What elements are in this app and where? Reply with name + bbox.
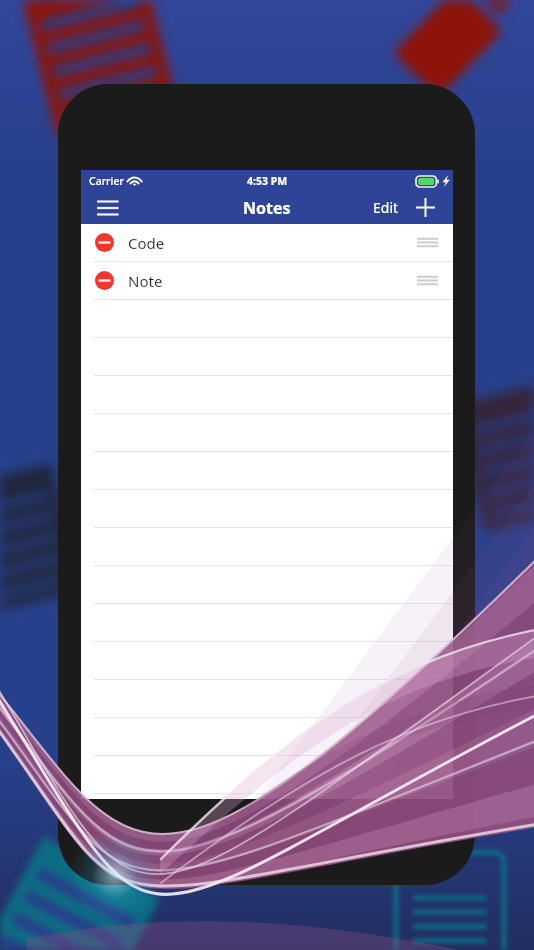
other: Reorder [417, 237, 438, 248]
button[interactable]: Menu [97, 197, 120, 219]
staticText: Edit [373, 198, 399, 217]
button[interactable]: Delete Note [81, 262, 453, 299]
button[interactable]: Edit [371, 195, 401, 220]
staticText: Code [128, 233, 165, 253]
staticText: 4:53 PM [247, 174, 288, 188]
button[interactable]: Add note [416, 198, 435, 217]
other: Reorder [417, 275, 438, 286]
button[interactable]: Delete Code [95, 233, 114, 252]
button[interactable]: Delete Note [95, 271, 114, 290]
staticText: Notes [243, 197, 291, 219]
staticText: Note [128, 271, 163, 291]
button[interactable]: Delete Code [81, 224, 453, 261]
staticText: Carrier [89, 174, 124, 188]
